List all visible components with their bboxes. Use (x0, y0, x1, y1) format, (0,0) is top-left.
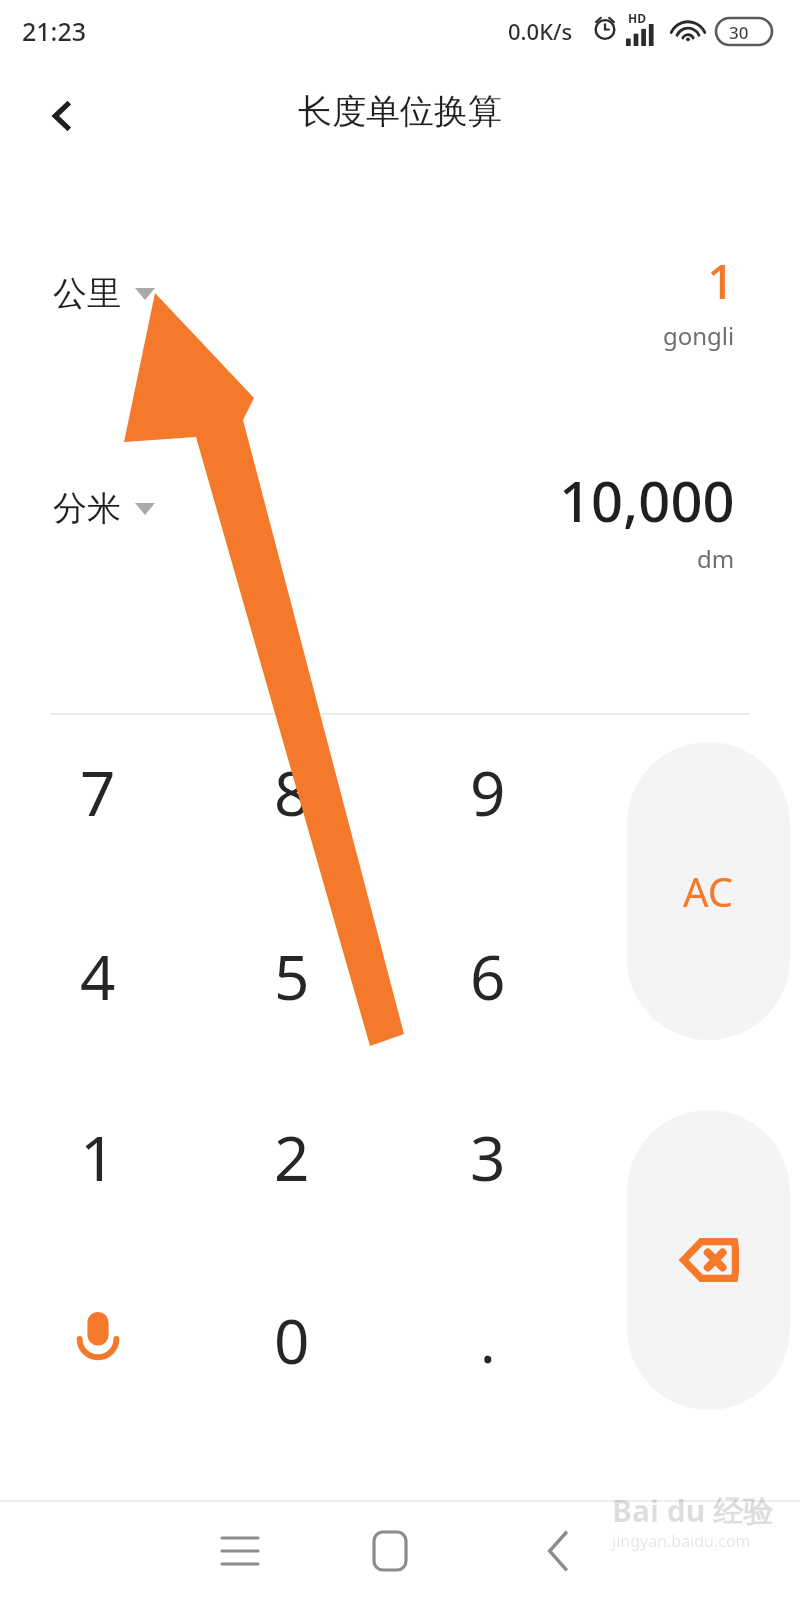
button[interactable]: Back (503, 1502, 613, 1600)
staticText: gongli (663, 319, 735, 352)
button[interactable]: 7 (1, 712, 195, 872)
button[interactable]: . (391, 1260, 585, 1420)
staticText: 0 (274, 1298, 310, 1382)
staticText: 分米 (53, 487, 121, 530)
button[interactable]: Recent apps (185, 1502, 295, 1600)
button[interactable]: 0 (195, 1260, 389, 1420)
staticText: . (480, 1301, 496, 1380)
staticText: AC (683, 864, 734, 918)
staticText: 5 (274, 934, 310, 1018)
button[interactable]: AC (627, 742, 790, 1040)
staticText: 21:23 (22, 14, 87, 48)
button[interactable]: 6 (391, 896, 585, 1056)
button[interactable]: 1 (430, 248, 735, 352)
button[interactable]: Back (28, 82, 96, 150)
button[interactable]: 5 (195, 896, 389, 1056)
staticText: Bai du 经验 (612, 1490, 773, 1531)
button[interactable]: 4 (1, 896, 195, 1056)
button[interactable]: 公里 (40, 258, 190, 328)
staticText: 30 (729, 21, 749, 44)
staticText: 长度单位换算 (0, 90, 800, 133)
button[interactable]: 9 (391, 712, 585, 872)
staticText: 公里 (53, 272, 121, 315)
button[interactable]: Voice input (1, 1260, 195, 1420)
staticText: 4 (80, 934, 116, 1018)
staticText: 10,000 (559, 462, 735, 538)
staticText: HD (628, 10, 646, 26)
staticText: jingyan.baidu.com (612, 1530, 751, 1552)
button[interactable]: 分米 (40, 473, 190, 543)
staticText: 7 (80, 750, 116, 834)
staticText: 1 (707, 248, 735, 313)
staticText: 8 (274, 750, 310, 834)
button[interactable]: Backspace (627, 1110, 790, 1410)
staticText: 9 (470, 750, 506, 834)
staticText: 3 (470, 1115, 506, 1199)
staticText: 0.0K/s (508, 16, 573, 46)
button[interactable]: 10,000 (400, 462, 735, 575)
button[interactable]: 3 (391, 1077, 585, 1237)
button[interactable]: 8 (195, 712, 389, 872)
button[interactable]: 2 (195, 1077, 389, 1237)
staticText: 1 (80, 1115, 116, 1199)
staticText: 6 (470, 934, 506, 1018)
button[interactable]: Home (335, 1502, 445, 1600)
button[interactable]: 1 (1, 1077, 195, 1237)
staticText: dm (697, 542, 735, 575)
staticText: 2 (274, 1115, 310, 1199)
